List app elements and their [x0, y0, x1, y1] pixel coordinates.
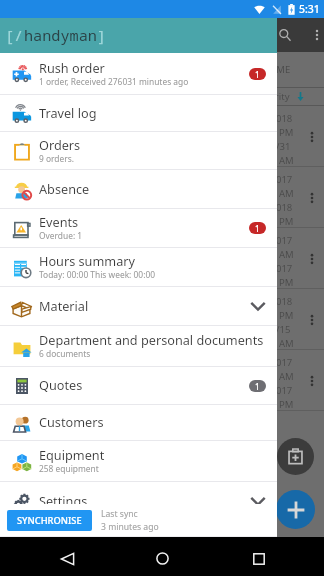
staticText: Hours summary: [39, 252, 136, 269]
staticText: AM: [279, 248, 294, 261]
staticText: Rush order: [39, 59, 105, 76]
staticText: AM: [279, 154, 294, 167]
button[interactable]: Recents: [235, 542, 283, 575]
staticText: 017: [276, 356, 293, 369]
button[interactable]: Events: [0, 209, 277, 248]
staticText: Department and personal documents: [39, 331, 264, 348]
staticText: Orders: [39, 136, 81, 153]
staticText: Priority: [257, 90, 290, 103]
staticText: [/: [5, 25, 24, 46]
staticText: Quotes: [39, 376, 83, 393]
button[interactable]: More options: [304, 22, 324, 48]
staticText: Overdue: 1: [39, 230, 83, 241]
staticText: AM: [279, 370, 294, 383]
button[interactable]: Travel log: [0, 95, 277, 132]
staticText: 017: [276, 234, 293, 247]
button[interactable]: SYNCHRONISE: [7, 510, 92, 531]
staticText: 018: [276, 201, 293, 214]
staticText: 017: [276, 173, 293, 186]
button[interactable]: Add rush order: [277, 438, 314, 475]
staticText: 5:31: [299, 2, 320, 16]
button[interactable]: Add: [276, 490, 315, 529]
staticText: 9 orders.: [39, 153, 74, 164]
button[interactable]: Search: [268, 18, 302, 52]
staticText: 018: [276, 295, 293, 308]
staticText: Travel log: [39, 104, 97, 121]
staticText: /31: [276, 140, 291, 153]
staticText: Customers: [39, 413, 104, 430]
staticText: AM: [279, 337, 294, 350]
staticText: 258 equipment: [39, 463, 99, 474]
staticText: 1: [255, 381, 260, 392]
staticText: AM: [279, 187, 294, 200]
staticText: /15: [276, 323, 291, 336]
button[interactable]: Material: [0, 287, 277, 326]
staticText: ]: [97, 25, 107, 46]
staticText: SYNCHRONISE: [17, 514, 82, 527]
button[interactable]: Rush order: [0, 53, 277, 95]
staticText: Today: 00:00 This week: 00:00: [39, 269, 155, 280]
staticText: PM: [279, 398, 294, 411]
staticText: NAME: [263, 63, 291, 76]
staticText: Events: [39, 213, 79, 230]
staticText: 1: [255, 69, 260, 80]
staticText: 018: [276, 112, 293, 125]
button[interactable]: Customers: [0, 405, 277, 441]
staticText: 017: [276, 384, 293, 397]
staticText: 6 documents: [39, 348, 91, 359]
staticText: 1: [255, 223, 260, 234]
staticText: PM: [279, 276, 294, 289]
staticText: PM: [279, 215, 294, 228]
staticText: Material: [39, 297, 89, 314]
button[interactable]: Absence: [0, 170, 277, 209]
button[interactable]: Back: [43, 542, 91, 575]
button[interactable]: Equipment: [0, 441, 277, 482]
staticText: PM: [279, 309, 294, 322]
button[interactable]: Hours summary: [0, 248, 277, 287]
button[interactable]: Department and personal documents: [0, 326, 277, 367]
button[interactable]: Settings: [0, 482, 277, 521]
staticText: 1 order, Received 276031 minutes ago: [39, 76, 189, 87]
staticText: handyman: [24, 25, 97, 46]
staticText: Absence: [39, 180, 90, 197]
staticText: 3 minutes ago: [101, 521, 159, 533]
button[interactable]: Orders: [0, 132, 277, 170]
button[interactable]: Quotes: [0, 367, 277, 405]
button[interactable]: Home: [138, 542, 186, 575]
staticText: Last sync: [101, 508, 138, 520]
staticText: Equipment: [39, 446, 105, 463]
staticText: PM: [279, 126, 294, 139]
staticText: 017: [276, 262, 293, 275]
staticText: Settings: [39, 492, 88, 509]
